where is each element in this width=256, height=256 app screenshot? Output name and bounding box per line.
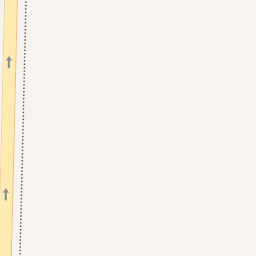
- button[interactable]: Scroll to top: [1, 56, 15, 68]
- button[interactable]: Scroll to top: [1, 188, 15, 200]
